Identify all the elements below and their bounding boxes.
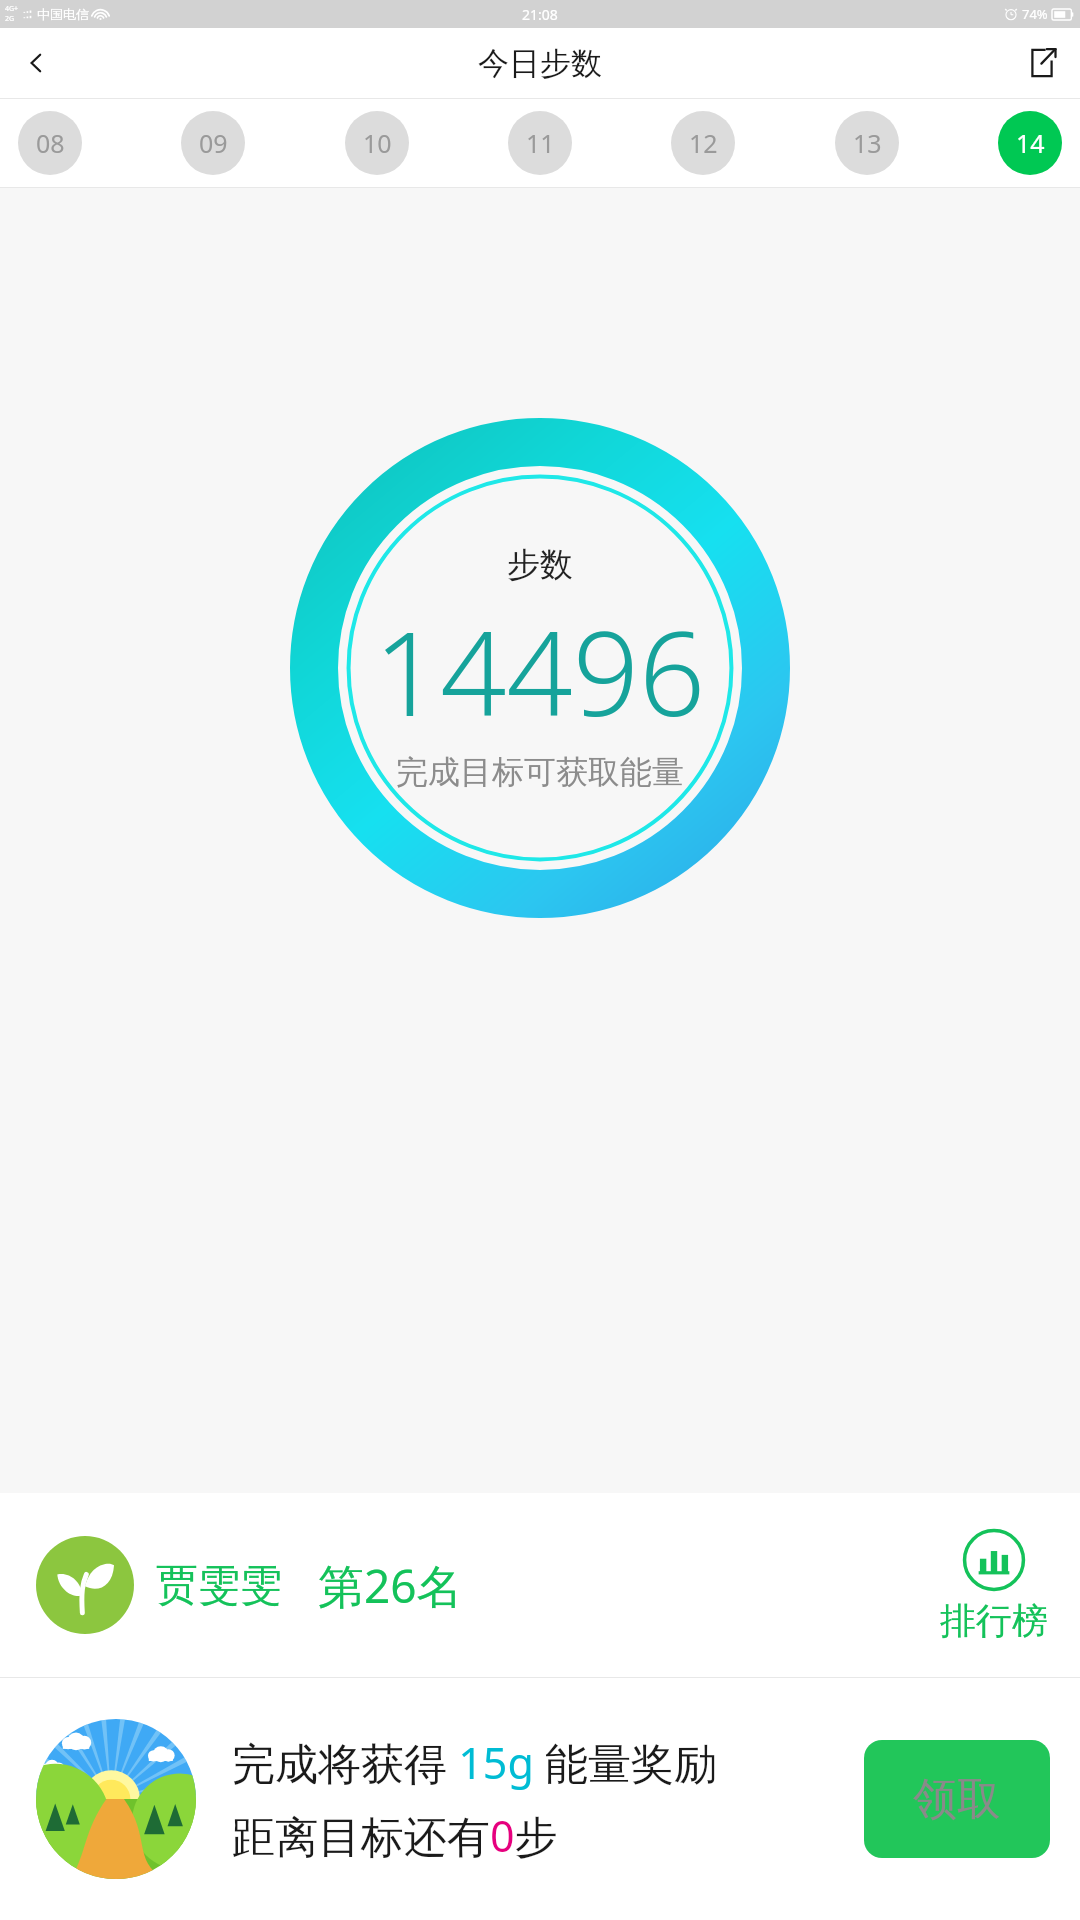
- staticText: 今日步数: [478, 44, 602, 83]
- button[interactable]: 12: [671, 111, 735, 175]
- button[interactable]: 13: [835, 111, 899, 175]
- staticText: 2G: [5, 14, 15, 24]
- staticText: 步数: [507, 544, 573, 586]
- button[interactable]: 11: [508, 111, 572, 175]
- staticText: 21:08: [522, 5, 558, 24]
- button[interactable]: 14: [998, 111, 1062, 175]
- button[interactable]: 09: [181, 111, 245, 175]
- staticText: 距离目标还有0步: [232, 1806, 558, 1865]
- staticText: 完成目标可获取能量: [396, 752, 684, 792]
- button[interactable]: 贾雯雯: [36, 1536, 463, 1634]
- staticText: 14496: [374, 592, 706, 750]
- button[interactable]: 08: [18, 111, 82, 175]
- staticText: 08: [36, 126, 65, 160]
- staticText: 领取: [913, 1772, 1001, 1827]
- staticText: 10: [363, 126, 392, 160]
- button[interactable]: Back: [8, 35, 64, 91]
- button[interactable]: 10: [345, 111, 409, 175]
- staticText: 09: [199, 126, 228, 160]
- button[interactable]: Share: [1014, 35, 1070, 91]
- staticText: 11: [526, 126, 555, 160]
- staticText: 第26名: [318, 1554, 463, 1617]
- staticText: 中国电信: [37, 6, 89, 22]
- staticText: 12: [689, 126, 718, 160]
- staticText: 4G+: [5, 4, 19, 14]
- staticText: 14: [1016, 126, 1045, 160]
- staticText: 排行榜: [940, 1598, 1048, 1643]
- button[interactable]: 领取: [864, 1740, 1050, 1858]
- staticText: 74%: [1022, 5, 1048, 23]
- staticText: 贾雯雯: [156, 1559, 282, 1612]
- staticText: 完成将获得 15g 能量奖励: [232, 1733, 717, 1792]
- staticText: 13: [853, 126, 882, 160]
- button[interactable]: 排行榜: [940, 1528, 1048, 1643]
